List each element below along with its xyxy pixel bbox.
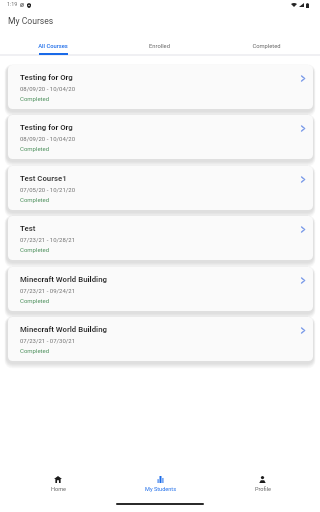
- button[interactable]: Profile: [212, 470, 314, 504]
- other: Open course: [301, 227, 305, 232]
- staticText: Minecraft World Building: [20, 325, 107, 334]
- button[interactable]: Minecraft World Building: [8, 317, 313, 361]
- staticText: My Courses: [8, 16, 54, 26]
- other: Open course: [301, 177, 305, 182]
- button[interactable]: Completed: [213, 37, 320, 56]
- staticText: Testing for Org: [20, 73, 73, 82]
- other: Open course: [301, 278, 305, 283]
- staticText: Completed: [252, 43, 281, 50]
- staticText: Home: [51, 486, 67, 493]
- staticText: Completed: [20, 95, 50, 102]
- other: Open course: [301, 126, 305, 131]
- staticText: Minecraft World Building: [20, 275, 107, 284]
- staticText: My Students: [145, 486, 177, 493]
- staticText: 1:19: [7, 1, 18, 7]
- staticText: Testing for Org: [20, 123, 73, 132]
- staticText: All Courses: [38, 43, 68, 50]
- staticText: Test Course1: [20, 174, 67, 183]
- other: Open course: [301, 76, 305, 81]
- staticText: Profile: [255, 486, 271, 493]
- staticText: Test: [20, 224, 36, 233]
- staticText: 07/23/21 - 09/24/21: [20, 287, 76, 294]
- staticText: Completed: [20, 347, 50, 354]
- button[interactable]: My Students: [110, 470, 212, 504]
- button[interactable]: Enrolled: [106, 37, 213, 56]
- staticText: 07/23/21 - 10/28/21: [20, 236, 76, 243]
- staticText: Completed: [20, 145, 50, 152]
- staticText: 08/09/20 - 10/04/20: [20, 135, 76, 142]
- staticText: Completed: [20, 196, 50, 203]
- staticText: Completed: [20, 246, 50, 253]
- button[interactable]: Testing for Org: [8, 115, 313, 159]
- button[interactable]: Home: [8, 470, 110, 504]
- other: Open course: [301, 328, 305, 333]
- staticText: 08/09/20 - 10/04/20: [20, 85, 76, 92]
- button[interactable]: Minecraft World Building: [8, 267, 313, 311]
- staticText: Completed: [20, 297, 50, 304]
- staticText: 07/23/21 - 07/30/21: [20, 337, 76, 344]
- button[interactable]: Test Course1: [8, 166, 313, 210]
- staticText: 07/05/20 - 10/21/20: [20, 186, 76, 193]
- button[interactable]: Testing for Org: [8, 65, 313, 109]
- staticText: Enrolled: [149, 43, 170, 50]
- button[interactable]: All Courses: [0, 37, 106, 56]
- button[interactable]: Test: [8, 216, 313, 260]
